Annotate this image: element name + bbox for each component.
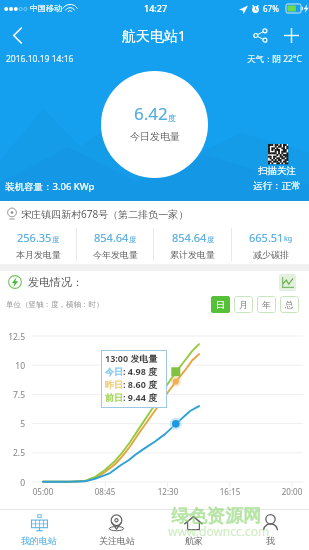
staticText: 20:00 (272, 486, 309, 497)
staticText: 总 (285, 299, 294, 310)
staticText: 今日 (105, 366, 123, 377)
staticText: 12.5 (0, 331, 25, 343)
staticText: 13:00 发电量 (105, 352, 158, 364)
button[interactable]: 总 (280, 296, 299, 313)
staticText: 运行：正常 (253, 180, 301, 192)
staticText: 854.64 (94, 230, 129, 245)
button[interactable]: 日 (211, 296, 230, 313)
staticText: 航家 (185, 535, 203, 546)
staticText: : 4.98 度 (123, 365, 158, 377)
staticText: 日 (216, 299, 225, 310)
button[interactable]: Back (0, 19, 34, 51)
staticText: 航天电站1 (122, 26, 187, 45)
staticText: www.downcc.com (168, 523, 270, 539)
button[interactable]: Add (275, 19, 307, 51)
button[interactable]: 年 (257, 296, 276, 313)
button[interactable]: QR code (268, 144, 288, 164)
staticText: 度 (207, 235, 214, 244)
staticText: 前日 (105, 392, 123, 403)
staticText: 昨日 (105, 379, 123, 390)
staticText: 2016.10.19 14:16 (6, 53, 74, 65)
button[interactable]: 256.35 (0, 226, 76, 263)
button[interactable]: 月 (234, 296, 253, 313)
button[interactable]: Share (245, 20, 275, 50)
button[interactable]: 关注电站 (78, 509, 155, 550)
staticText: 本月发电量 (16, 249, 61, 260)
staticText: 256.35 (17, 230, 52, 245)
staticText: 今年发电量 (93, 249, 138, 260)
staticText: 16:15 (210, 486, 250, 497)
staticText: 月 (239, 299, 248, 310)
button[interactable]: 我 (232, 509, 309, 550)
staticText: 天气：阴 22°C (247, 53, 302, 65)
staticText: 减少碳排 (253, 249, 289, 260)
button[interactable]: 航家 (155, 509, 232, 550)
staticText: 度 (52, 235, 59, 244)
staticText: 度 (129, 235, 136, 244)
staticText: 中国移动 (30, 3, 62, 13)
staticText: 宋庄镇四新村678号（第二排负一家） (21, 207, 189, 221)
staticText: : 9.44 度 (123, 391, 158, 403)
staticText: 扫描关注 (258, 165, 296, 177)
staticText: 装机容量：3.06 KWp (5, 180, 95, 193)
button[interactable]: 854.64 (77, 226, 153, 263)
staticText: kg (284, 234, 293, 244)
staticText: 7.5 (0, 389, 25, 401)
staticText: 发电情况： (28, 275, 83, 289)
button[interactable]: Chart view (279, 274, 296, 291)
staticText: 67% (263, 3, 279, 14)
button[interactable]: 我的电站 (0, 509, 78, 550)
staticText: 05:00 (23, 486, 63, 497)
staticText: 6.42 (134, 102, 168, 125)
staticText: 今日发电量 (130, 130, 180, 143)
button[interactable]: 665.51 (232, 226, 309, 263)
staticText: 854.64 (172, 230, 207, 245)
button[interactable]: 宋庄镇四新村678号（第二排负一家） (7, 203, 309, 225)
staticText: 5 (0, 418, 25, 430)
staticText: 绿色资源网 (171, 505, 261, 528)
staticText: 10 (0, 360, 25, 372)
staticText: 2.5 (0, 447, 25, 459)
staticText: 度 (168, 113, 176, 123)
staticText: 14:27 (144, 2, 168, 14)
staticText: 年 (262, 299, 271, 310)
button[interactable]: 854.64 (154, 226, 231, 263)
staticText: 12:30 (148, 486, 188, 497)
staticText: 我的电站 (21, 535, 57, 546)
staticText: 665.51 (249, 230, 284, 245)
staticText: 关注电站 (99, 535, 135, 546)
staticText: 累计发电量 (170, 249, 215, 260)
staticText: 0 (0, 477, 25, 489)
staticText: : 8.60 度 (123, 378, 158, 390)
staticText: 单位（竖轴：度，横轴：时） (6, 300, 104, 309)
staticText: 08:45 (85, 486, 125, 497)
staticText: 我 (266, 535, 275, 546)
